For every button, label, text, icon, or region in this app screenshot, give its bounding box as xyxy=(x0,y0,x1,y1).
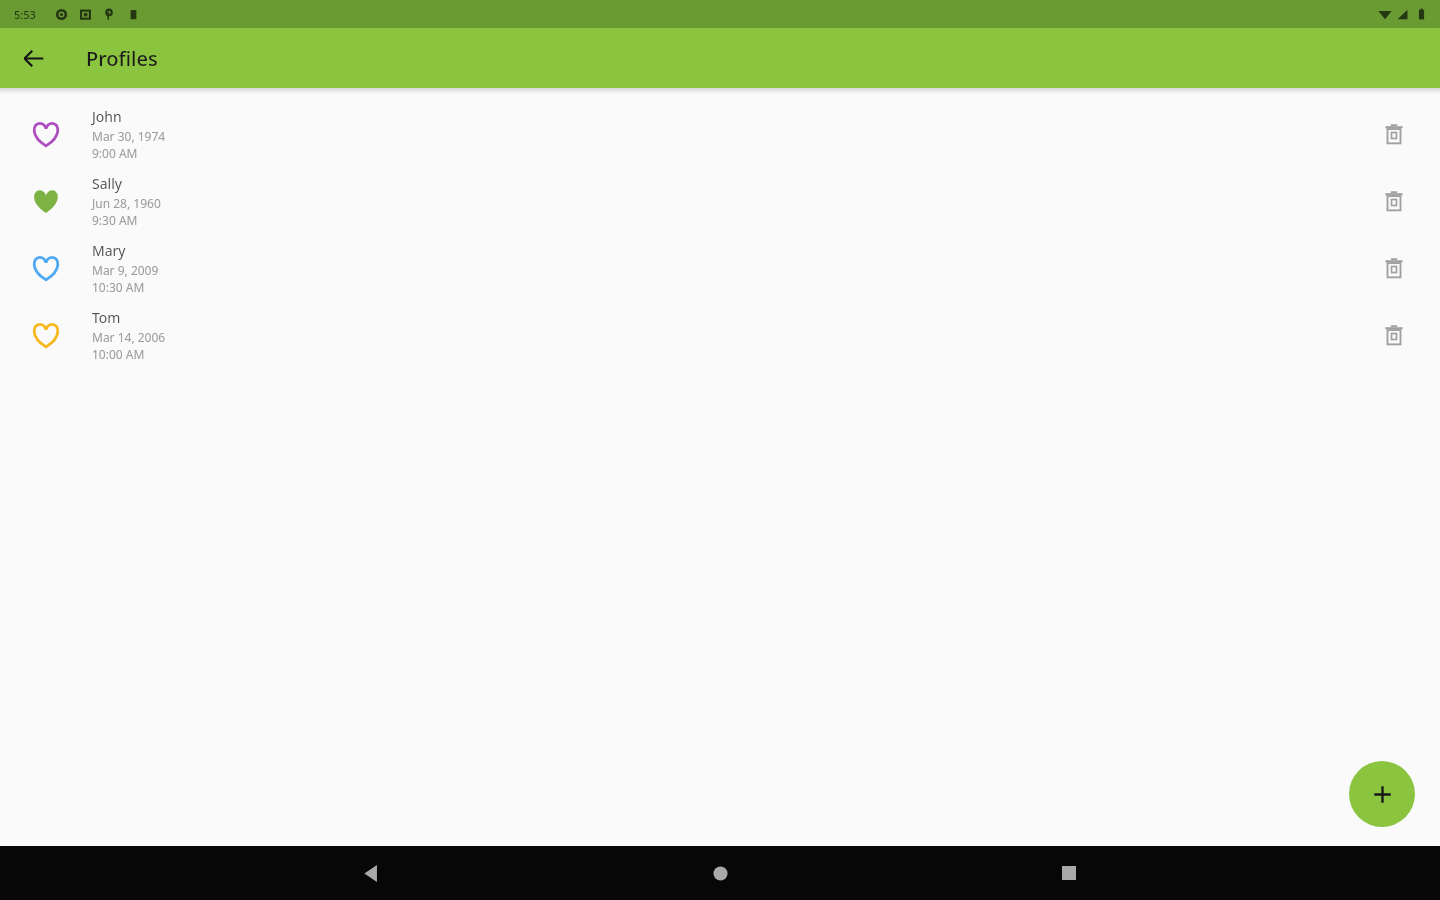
button[interactable]: Delete John xyxy=(1370,110,1418,158)
button[interactable]: Tom xyxy=(0,301,1440,368)
button[interactable]: Delete Sally xyxy=(1370,177,1418,225)
staticText: Mar 30, 1974 xyxy=(92,128,166,144)
staticText: Tom xyxy=(92,308,121,327)
staticText: 9:30 AM xyxy=(92,212,138,228)
button[interactable]: Mary xyxy=(0,234,1440,301)
staticText: 10:30 AM xyxy=(92,279,145,295)
staticText: 5:53 xyxy=(14,7,36,22)
button[interactable]: Navigate up xyxy=(9,34,57,82)
staticText: Mar 14, 2006 xyxy=(92,329,166,345)
staticText: Profiles xyxy=(86,45,158,72)
staticText: Jun 28, 1960 xyxy=(92,195,161,211)
staticText: Sally xyxy=(92,174,122,193)
button[interactable]: Back xyxy=(347,849,395,897)
staticText: Mary xyxy=(92,241,126,260)
button[interactable]: Add profile xyxy=(1349,761,1415,827)
button[interactable]: John xyxy=(0,100,1440,167)
button[interactable]: Home xyxy=(696,849,744,897)
staticText: Mar 9, 2009 xyxy=(92,262,159,278)
button[interactable]: Delete Tom xyxy=(1370,311,1418,359)
staticText: 10:00 AM xyxy=(92,346,145,362)
button[interactable]: Delete Mary xyxy=(1370,244,1418,292)
button[interactable]: Recent apps xyxy=(1045,849,1093,897)
staticText: John xyxy=(92,107,122,126)
button[interactable]: Sally xyxy=(0,167,1440,234)
staticText: 9:00 AM xyxy=(92,145,138,161)
